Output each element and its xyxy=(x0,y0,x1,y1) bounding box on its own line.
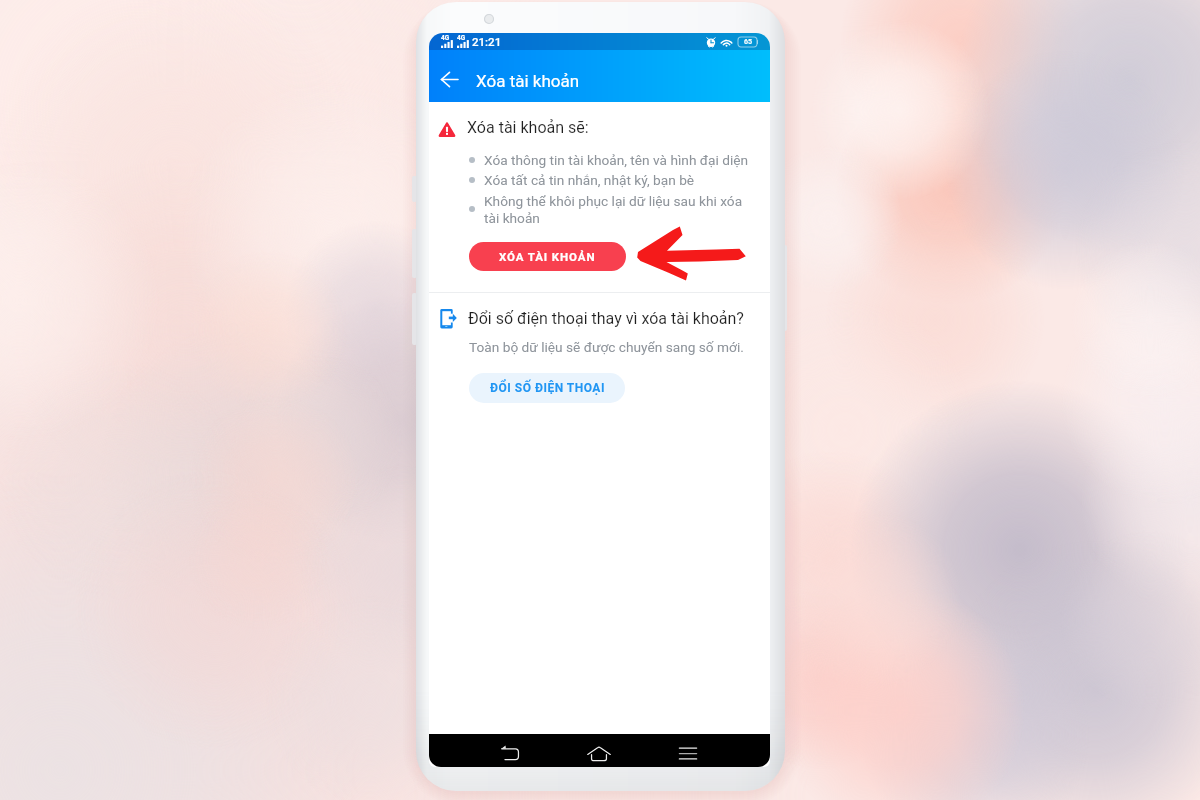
staticText: Đổi số điện thoại thay vì xóa tài khoản? xyxy=(468,309,744,328)
staticText: Xóa tài khoản sẽ: xyxy=(467,118,589,137)
button[interactable]: Home xyxy=(568,738,630,767)
staticText: Xóa thông tin tài khoản, tên và hình đại… xyxy=(484,152,749,168)
button[interactable]: Back xyxy=(429,54,469,104)
staticText: Xóa tất cả tin nhắn, nhật ký, bạn bè xyxy=(484,172,695,188)
staticText: Xóa tài khoản xyxy=(476,71,580,91)
button[interactable]: Recent apps xyxy=(657,738,719,767)
staticText: Toàn bộ dữ liệu sẽ được chuyển sang số m… xyxy=(469,339,744,355)
staticText: Không thể khôi phục lại dữ liệu sau khi … xyxy=(484,193,743,227)
staticText: 21:21 xyxy=(472,35,502,48)
button[interactable]: ĐỔI SỐ ĐIỆN THOẠI xyxy=(469,373,625,403)
staticText: 4G xyxy=(441,34,450,42)
button[interactable]: Back xyxy=(479,737,541,767)
staticText: ĐỔI SỐ ĐIỆN THOẠI xyxy=(490,381,605,395)
staticText: 4G xyxy=(457,34,466,42)
staticText: 65 xyxy=(744,38,752,46)
button[interactable]: XÓA TÀI KHOẢN xyxy=(469,242,626,271)
staticText: XÓA TÀI KHOẢN xyxy=(499,250,596,263)
